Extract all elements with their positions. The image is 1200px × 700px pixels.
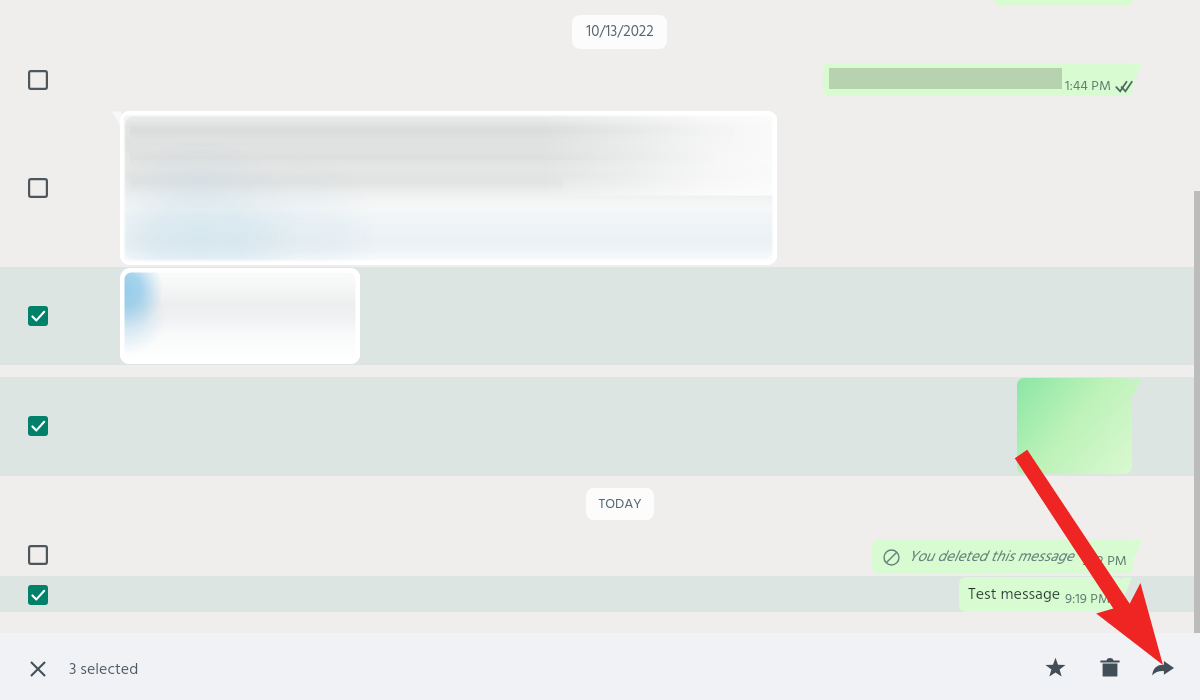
button[interactable]: Selected message	[28, 306, 48, 326]
staticText: 9:19 PM	[1065, 588, 1110, 610]
button[interactable]	[112, 111, 777, 265]
staticText: 10/13/2022	[586, 20, 654, 44]
staticText: 3 selected	[69, 657, 139, 683]
button[interactable]: 10/13/2022	[572, 15, 667, 49]
button[interactable]: Delete	[1090, 647, 1130, 687]
button[interactable]: Select message	[28, 178, 48, 198]
button[interactable]: Select message	[28, 545, 48, 565]
staticText: 9:12 PM	[1082, 550, 1127, 572]
button[interactable]: You deleted this message	[872, 539, 1142, 574]
button[interactable]: Forward	[1142, 647, 1182, 687]
button[interactable]: Star	[1035, 647, 1075, 687]
staticText: TODAY	[598, 493, 642, 515]
staticText: Test message	[968, 582, 1061, 608]
button[interactable]: Selected message	[28, 416, 48, 436]
button[interactable]	[994, 0, 1142, 6]
button[interactable]: TODAY	[586, 488, 654, 520]
button[interactable]: Select message	[28, 70, 48, 90]
button[interactable]: 1:44 PM	[823, 63, 1142, 96]
button[interactable]: Selected message	[28, 585, 48, 605]
button[interactable]: Test message	[959, 577, 1132, 612]
staticText: You deleted this message	[908, 545, 1074, 569]
button[interactable]: Close selection	[18, 649, 57, 688]
staticText: 1:44 PM	[1065, 75, 1111, 97]
button[interactable]	[1017, 378, 1141, 474]
button[interactable]	[120, 268, 360, 364]
